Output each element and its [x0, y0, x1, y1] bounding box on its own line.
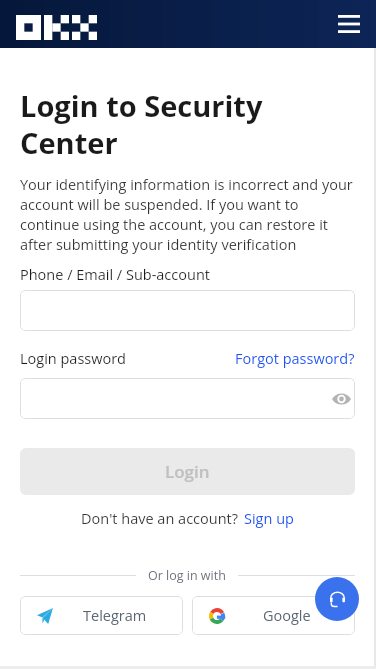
- button[interactable]: Show password: [329, 387, 353, 411]
- button[interactable]: Forgot password?: [235, 349, 355, 369]
- staticText: Your identifying information is incorrec…: [20, 174, 355, 254]
- staticText: Telegram: [83, 606, 147, 626]
- button[interactable]: Google: [192, 596, 355, 635]
- button[interactable]: Show password: [20, 378, 355, 419]
- button[interactable]: Sign up: [244, 509, 294, 529]
- button[interactable]: [20, 290, 355, 331]
- staticText: Login: [165, 460, 210, 483]
- staticText: Google: [263, 606, 311, 626]
- button[interactable]: Menu: [332, 7, 366, 41]
- button[interactable]: Login: [20, 448, 355, 495]
- staticText: Don't have an account?: [81, 509, 238, 529]
- button[interactable]: Telegram: [20, 596, 183, 635]
- button[interactable]: Customer support: [315, 577, 359, 621]
- staticText: Or log in with: [148, 567, 226, 584]
- staticText: Forgot password?: [235, 349, 355, 369]
- staticText: Sign up: [244, 509, 294, 529]
- staticText: Phone / Email / Sub-account: [20, 265, 210, 285]
- staticText: Login to Security Center: [20, 88, 355, 162]
- staticText: Login password: [20, 349, 126, 369]
